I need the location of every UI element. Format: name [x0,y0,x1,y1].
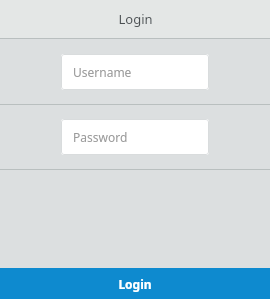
staticText: Login [118,10,153,28]
staticText: Password [73,129,128,145]
button[interactable]: Login [0,268,270,299]
staticText: Username [73,64,132,80]
button[interactable]: Password [61,119,209,155]
staticText: Login [118,276,152,292]
button[interactable]: Username [61,54,209,90]
